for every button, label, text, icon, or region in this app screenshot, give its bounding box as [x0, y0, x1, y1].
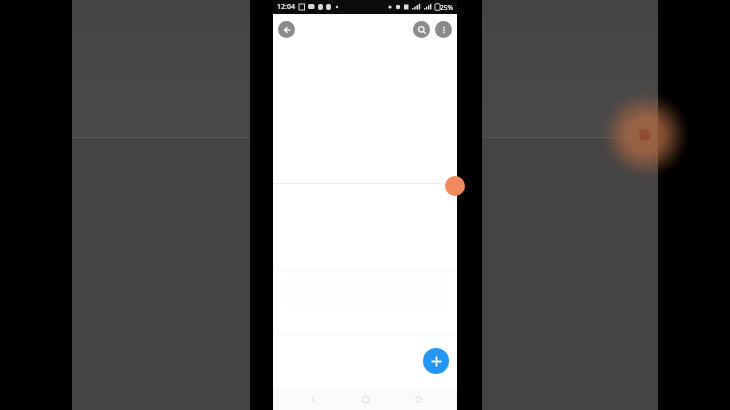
staticText: 25% [440, 3, 453, 12]
staticText: 12:04 [277, 2, 295, 12]
button[interactable]: Add [423, 348, 449, 374]
button[interactable]: Home [352, 388, 378, 410]
button[interactable]: Recent apps [405, 388, 431, 410]
button[interactable]: More options [435, 21, 452, 38]
button[interactable]: Navigate back [300, 388, 326, 410]
button[interactable]: Search [413, 21, 430, 38]
button[interactable]: Back [278, 21, 295, 38]
